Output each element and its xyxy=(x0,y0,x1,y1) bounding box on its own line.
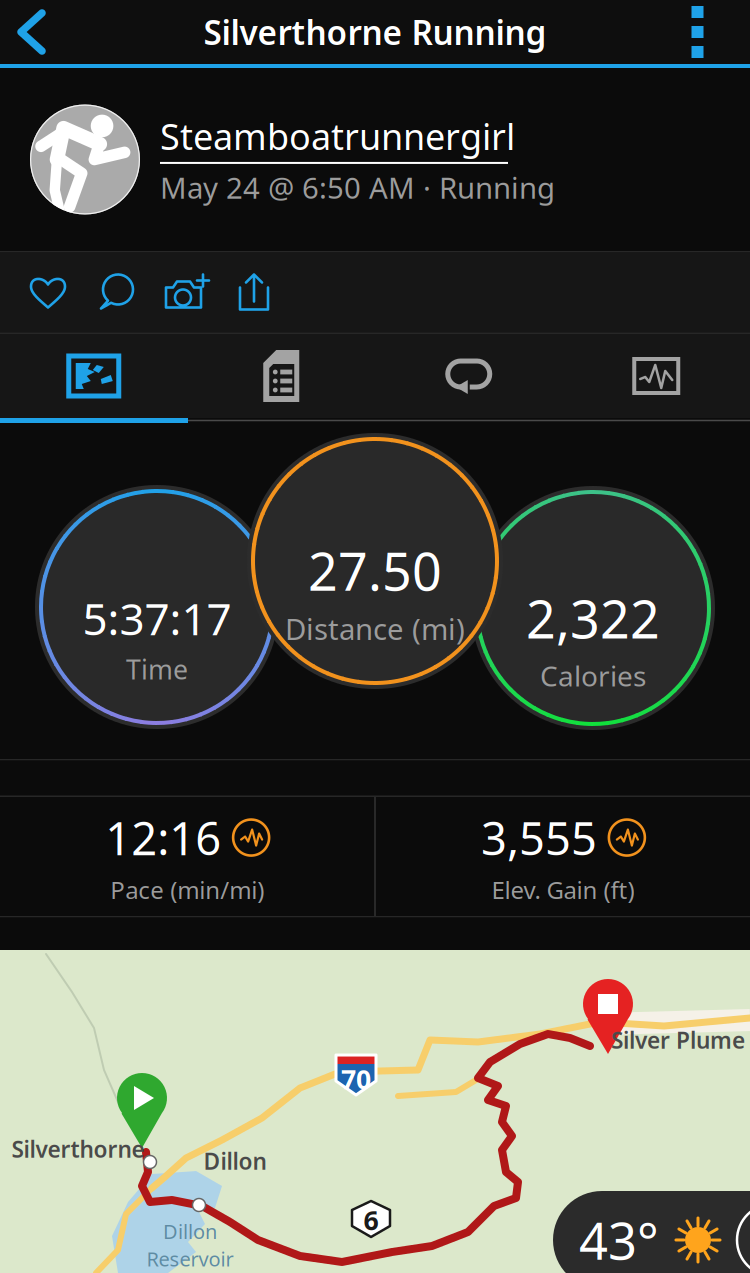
button[interactable]: Steamboatrunnergirl xyxy=(0,68,750,251)
staticText: 6 xyxy=(363,1202,378,1238)
button[interactable]: Summary xyxy=(187,334,375,418)
staticText: Distance (mi) xyxy=(285,609,465,648)
staticText: May 24 @ 6:50 AM · Running xyxy=(160,168,555,207)
staticText: Silverthorne xyxy=(11,1134,144,1164)
button[interactable]: Charts xyxy=(562,334,750,418)
staticText: Pace (min/mi) xyxy=(110,874,264,906)
button[interactable]: More options xyxy=(645,0,750,64)
staticText: 2,322 xyxy=(526,584,660,653)
staticText: 70 xyxy=(341,1061,371,1097)
staticText: Reservoir xyxy=(146,1245,233,1272)
button[interactable]: Add photo xyxy=(152,252,220,332)
staticText: Dillon xyxy=(163,1218,217,1244)
staticText: Time xyxy=(126,651,188,687)
button[interactable]: Share xyxy=(220,252,288,332)
staticText: Calories xyxy=(540,657,646,694)
staticText: Silverthorne Running xyxy=(203,10,546,54)
staticText: Elev. Gain (ft) xyxy=(491,874,634,906)
button[interactable]: Map xyxy=(0,334,187,418)
staticText: 3,555 xyxy=(481,807,597,868)
button[interactable]: Laps xyxy=(375,334,562,418)
staticText: Silver Plume xyxy=(611,1025,745,1055)
staticText: 27.50 xyxy=(308,536,442,605)
staticText: 5:37:17 xyxy=(82,589,231,647)
staticText: Steamboatrunnergirl xyxy=(160,112,515,160)
button[interactable]: Back xyxy=(0,0,63,64)
staticText: Dillon xyxy=(203,1146,266,1176)
staticText: 43° xyxy=(579,1206,659,1273)
staticText: 12:16 xyxy=(105,807,221,868)
button[interactable]: Like xyxy=(12,252,84,332)
button[interactable]: Comment xyxy=(84,252,152,332)
